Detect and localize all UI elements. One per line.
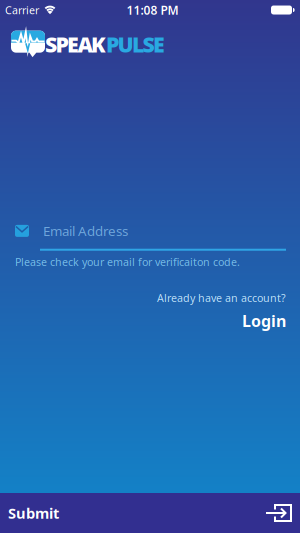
button[interactable]: Email Address bbox=[0, 220, 300, 251]
staticText: SPEAK bbox=[45, 30, 106, 58]
button[interactable]: Submit bbox=[0, 493, 300, 533]
staticText: Already have an account? bbox=[157, 291, 286, 305]
button[interactable]: Login bbox=[242, 310, 286, 331]
staticText: PULSE bbox=[106, 30, 165, 58]
staticText: Carrier bbox=[5, 3, 39, 17]
staticText: Login bbox=[242, 310, 286, 331]
staticText: Submit bbox=[8, 503, 59, 523]
staticText: Please check your email for verificaiton… bbox=[15, 255, 240, 269]
staticText: 11:08 PM bbox=[126, 2, 178, 18]
staticText: Email Address bbox=[43, 222, 128, 240]
